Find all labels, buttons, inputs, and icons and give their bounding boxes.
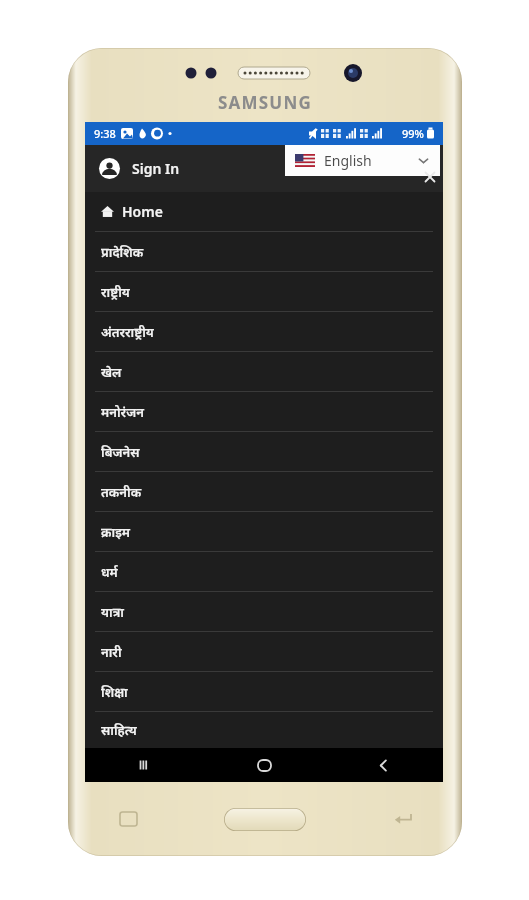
button[interactable]: मनोरंजन <box>85 392 443 431</box>
button[interactable]: प्रादेशिक <box>85 232 443 271</box>
button[interactable]: Back <box>324 748 443 782</box>
staticText: धर्म <box>101 563 118 581</box>
staticText: 9:38 <box>94 126 116 141</box>
staticText: Sign In <box>132 159 180 178</box>
staticText: राष्ट्रीय <box>101 283 130 301</box>
staticText: अंतरराष्ट्रीय <box>101 323 154 341</box>
button[interactable]: शिक्षा <box>85 672 443 711</box>
button[interactable]: राष्ट्रीय <box>85 272 443 311</box>
staticText: तकनीक <box>101 483 142 501</box>
staticText: बिजनेस <box>101 443 140 461</box>
staticText: Home <box>122 202 163 221</box>
button[interactable]: खेल <box>85 352 443 391</box>
button[interactable]: Sign In <box>85 145 443 192</box>
staticText: क्राइम <box>101 523 130 541</box>
button[interactable]: English <box>285 145 440 176</box>
button[interactable]: क्राइम <box>85 512 443 551</box>
staticText: SAMSUNG <box>218 91 312 114</box>
button[interactable]: यात्रा <box>85 592 443 631</box>
staticText: 99% <box>402 126 424 141</box>
button[interactable]: Home <box>205 748 324 782</box>
button[interactable]: तकनीक <box>85 472 443 511</box>
staticText: यात्रा <box>101 603 124 621</box>
staticText: शिक्षा <box>101 683 128 701</box>
staticText: English <box>324 151 417 170</box>
button[interactable]: Home <box>85 192 443 231</box>
staticText: प्रादेशिक <box>101 243 144 261</box>
button[interactable]: अंतरराष्ट्रीय <box>85 312 443 351</box>
button[interactable]: Recent apps <box>85 748 205 782</box>
button[interactable]: बिजनेस <box>85 432 443 471</box>
staticText: नारी <box>101 643 122 661</box>
button[interactable]: धर्म <box>85 552 443 591</box>
staticText: साहित्य <box>101 721 137 739</box>
button[interactable]: नारी <box>85 632 443 671</box>
staticText: मनोरंजन <box>101 403 144 421</box>
staticText: खेल <box>101 363 122 381</box>
button[interactable]: Close <box>422 169 438 185</box>
button[interactable]: साहित्य <box>85 712 443 748</box>
